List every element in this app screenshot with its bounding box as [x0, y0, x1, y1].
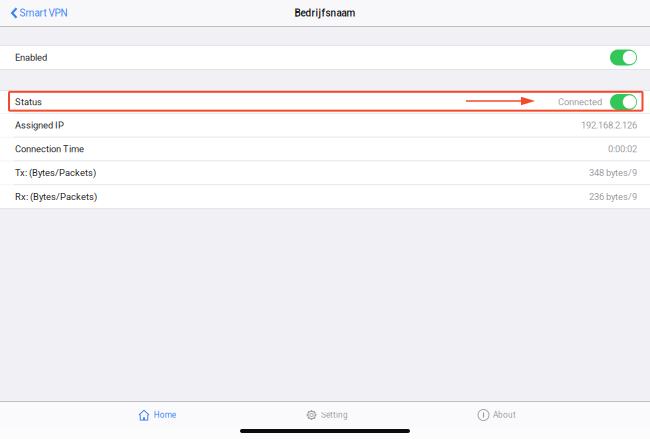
button[interactable]: Smart VPN	[0, 0, 76, 26]
button[interactable]: About	[469, 402, 521, 428]
staticText: Connection Time	[15, 144, 84, 154]
button[interactable]: Enabled	[0, 46, 650, 69]
button[interactable]: Assigned IP	[0, 114, 650, 137]
button[interactable]: Status	[0, 91, 650, 113]
staticText: About	[493, 410, 516, 420]
button[interactable]: Rx: (Bytes/Packets)	[0, 185, 650, 208]
button[interactable]: Home	[129, 402, 181, 428]
staticText: 192.168.2.126	[581, 120, 637, 131]
staticText: Smart VPN	[20, 7, 68, 19]
staticText: Bedrijfsnaam	[294, 7, 355, 19]
staticText: 0:00:02	[608, 144, 637, 154]
staticText: Assigned IP	[15, 120, 64, 131]
button[interactable]: Connection Time	[0, 138, 650, 161]
staticText: Rx: (Bytes/Packets)	[15, 191, 97, 202]
button[interactable]: Setting	[297, 402, 353, 428]
staticText: 236 bytes/9	[589, 191, 637, 202]
staticText: Home	[154, 410, 176, 420]
button[interactable]: Tx: (Bytes/Packets)	[0, 161, 650, 184]
staticText: Enabled	[15, 52, 47, 63]
staticText: Connected	[558, 96, 602, 107]
staticText: Status	[15, 96, 42, 107]
staticText: 348 bytes/9	[589, 167, 637, 178]
staticText: Setting	[321, 410, 348, 420]
staticText: Tx: (Bytes/Packets)	[15, 167, 96, 178]
